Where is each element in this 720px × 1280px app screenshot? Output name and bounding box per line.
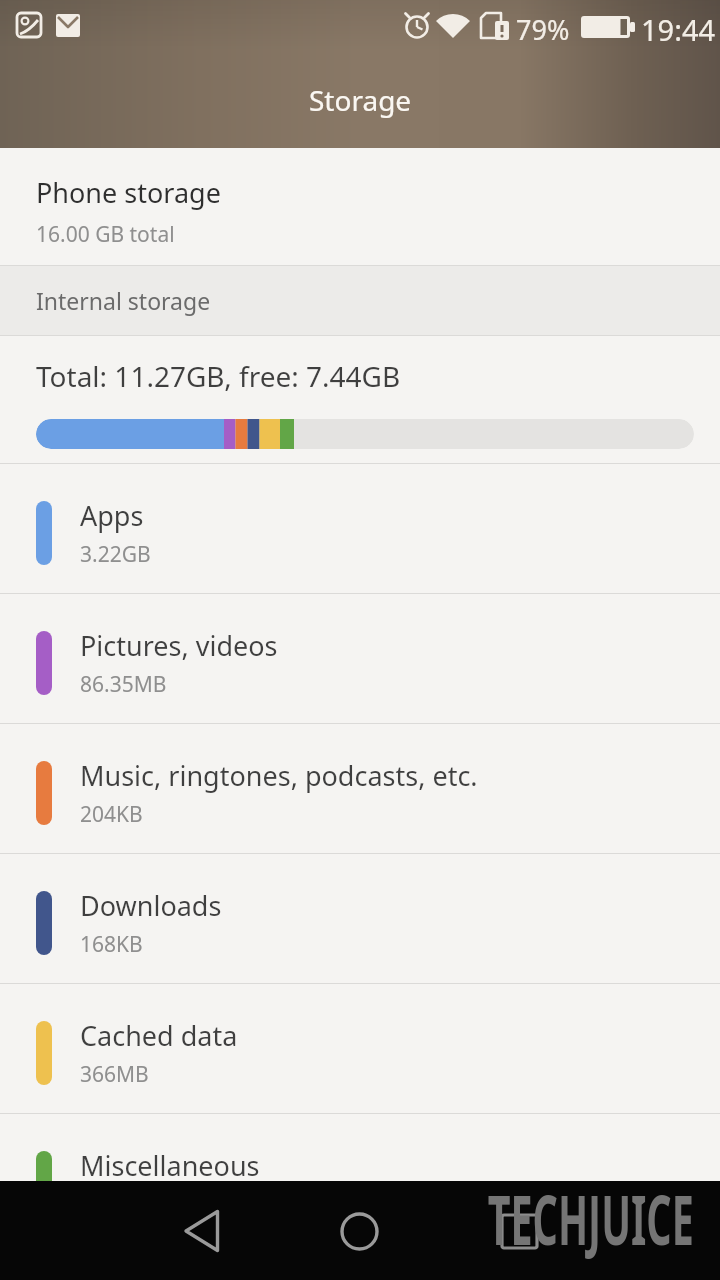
staticText: 19:44 — [641, 10, 716, 49]
button[interactable]: Miscellaneous — [0, 1118, 720, 1181]
staticText: Apps — [80, 497, 144, 534]
staticText: Miscellaneous — [80, 1147, 260, 1181]
staticText: 168KB — [80, 930, 143, 959]
staticText: Downloads — [80, 887, 222, 924]
staticText: Cached data — [80, 1017, 238, 1054]
staticText: 86.35MB — [80, 670, 167, 699]
staticText: 366MB — [80, 1060, 149, 1089]
staticText: Music, ringtones, podcasts, etc. — [80, 757, 478, 794]
staticText: 79% — [516, 11, 570, 48]
button[interactable]: Pictures, videos — [0, 598, 720, 727]
button[interactable]: Downloads — [0, 858, 720, 987]
staticText: 204KB — [80, 800, 143, 829]
button[interactable]: Phone storage — [0, 148, 720, 265]
staticText: 16.00 GB total — [36, 220, 175, 249]
button[interactable]: Apps — [0, 468, 720, 597]
button[interactable]: Music, ringtones, podcasts, etc. — [0, 728, 720, 857]
button[interactable]: Cached data — [0, 988, 720, 1117]
button[interactable]: TECHJUICE — [413, 1172, 720, 1265]
staticText: 3.22GB — [80, 540, 151, 569]
staticText: Total: 11.27GB, free: 7.44GB — [36, 357, 401, 395]
staticText: Storage — [309, 81, 412, 119]
staticText: Internal storage — [36, 285, 211, 316]
staticText: Phone storage — [36, 174, 221, 211]
staticText: Pictures, videos — [80, 627, 278, 664]
staticText: TECHJUICE — [488, 1172, 694, 1265]
